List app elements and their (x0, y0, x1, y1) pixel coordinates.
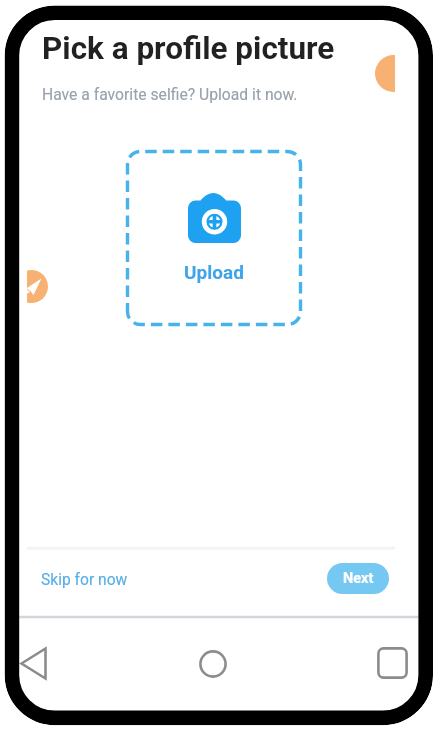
staticText: Next (343, 570, 374, 587)
button[interactable]: Home (199, 650, 227, 678)
staticText: Upload (184, 261, 244, 283)
button[interactable]: Recent apps (377, 647, 408, 679)
staticText: Have a favorite selfie? Upload it now. (42, 85, 298, 103)
button[interactable]: Skip for now (41, 563, 128, 597)
staticText: Skip for now (41, 571, 128, 589)
staticText: Pick a profile picture (42, 30, 335, 67)
button[interactable]: Next (327, 563, 389, 594)
button[interactable]: Back (20, 647, 47, 680)
button[interactable]: Upload (126, 150, 302, 326)
